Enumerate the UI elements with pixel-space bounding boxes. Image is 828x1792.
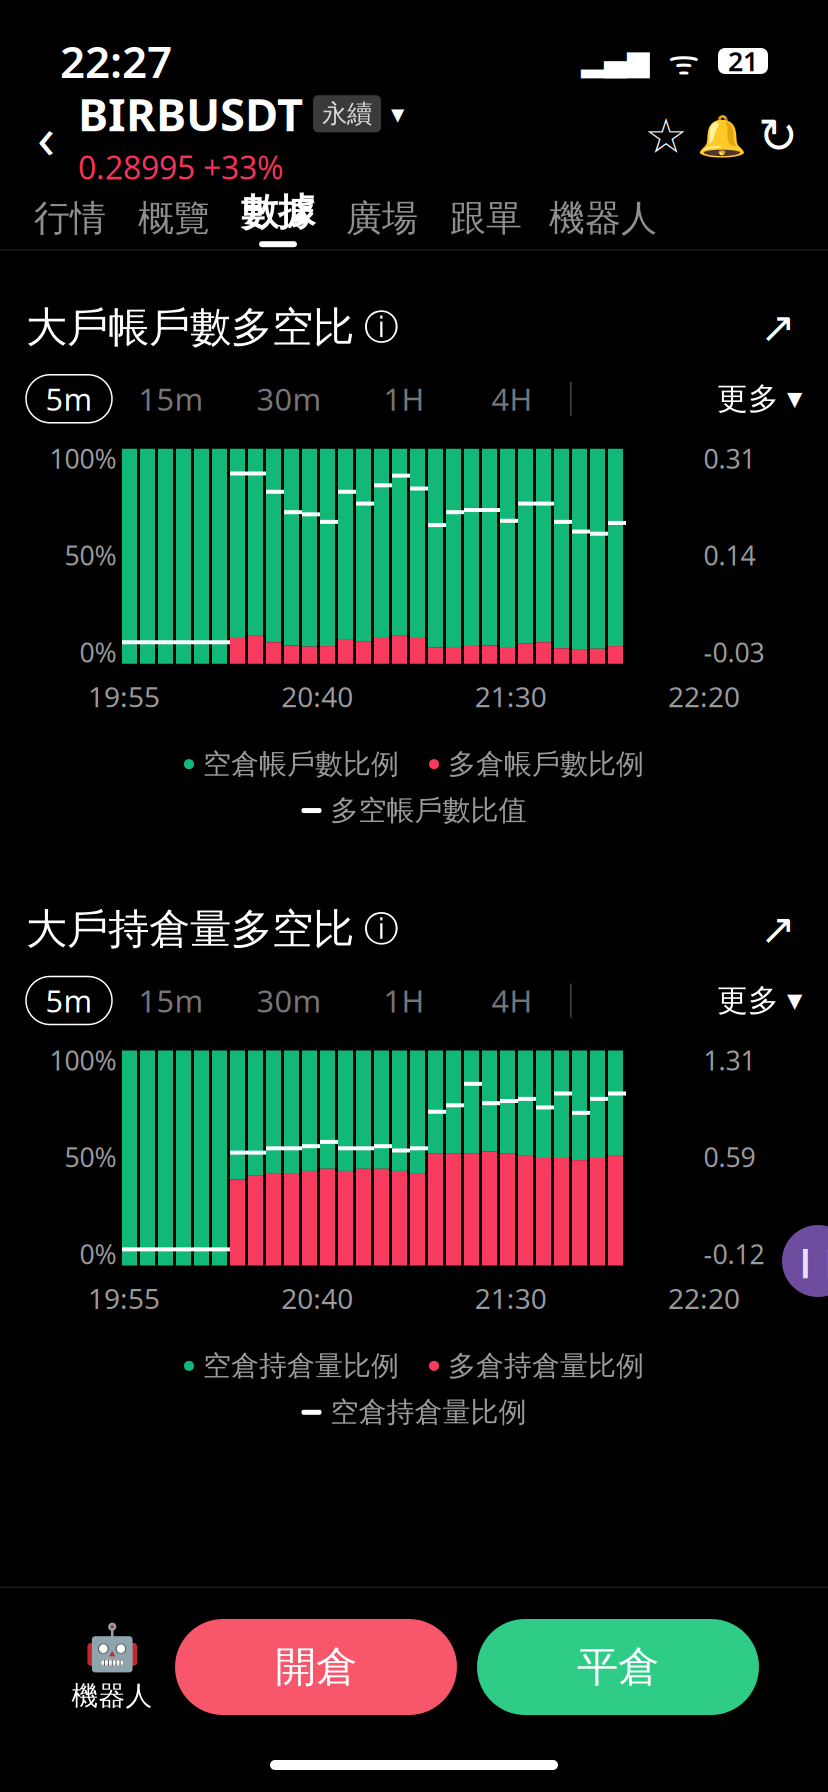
staticText: 5m xyxy=(45,980,92,1021)
staticText: 0% xyxy=(79,634,116,670)
button[interactable]: Share xyxy=(750,108,806,164)
staticText: 空倉持倉量比例 xyxy=(330,1395,526,1429)
staticText: 行情 xyxy=(34,196,106,240)
staticText: 20:40 xyxy=(281,1279,353,1317)
button[interactable]: 數據 xyxy=(226,187,330,249)
staticText: 更多 xyxy=(717,982,779,1019)
staticText: ❙❙ xyxy=(793,1244,828,1278)
button[interactable]: 1H xyxy=(348,976,460,1024)
button[interactable]: 更多 xyxy=(717,375,802,423)
staticText: 大戶帳戶數多空比 xyxy=(26,302,354,353)
staticText: 0.59 xyxy=(703,1139,755,1175)
button[interactable]: 跟單 xyxy=(434,190,538,246)
staticText: 1H xyxy=(383,378,424,419)
button[interactable]: Back xyxy=(22,106,70,166)
staticText: 永續 xyxy=(322,98,372,129)
button[interactable]: 5m xyxy=(26,375,112,423)
button[interactable]: Share xyxy=(754,303,802,351)
staticText: 5m xyxy=(45,378,92,419)
button[interactable]: 更多 xyxy=(717,976,802,1024)
staticText: 跟單 xyxy=(450,196,522,240)
staticText: 100% xyxy=(49,441,116,476)
staticText: 30m xyxy=(256,980,321,1021)
button[interactable]: Favourite xyxy=(638,108,694,164)
staticText: 數據 xyxy=(241,189,315,235)
button[interactable]: 🤖 xyxy=(69,1619,155,1715)
staticText: 21 xyxy=(728,43,758,79)
staticText: 🤖 xyxy=(84,1622,140,1673)
staticText: 0% xyxy=(79,1236,116,1271)
staticText: BIRBUSDT xyxy=(78,84,303,144)
staticText: 0.28995 +33% xyxy=(78,146,284,188)
staticText: 20:40 xyxy=(281,678,353,715)
staticText: 22:20 xyxy=(668,1279,740,1317)
staticText: 更多 xyxy=(717,380,779,418)
staticText: 50% xyxy=(64,1139,116,1175)
button[interactable]: 15m xyxy=(112,375,230,423)
button[interactable]: 15m xyxy=(112,976,230,1024)
button[interactable]: 4H xyxy=(460,375,564,423)
button[interactable]: Share xyxy=(754,905,802,953)
staticText: ⓘ xyxy=(354,908,399,950)
staticText: 21:30 xyxy=(475,678,547,715)
staticText: 15m xyxy=(138,980,203,1021)
staticText: ᯤ xyxy=(650,38,718,84)
staticText: 4H xyxy=(491,980,532,1021)
button[interactable]: Floating assistant xyxy=(782,1225,828,1297)
button[interactable]: 行情 xyxy=(18,190,122,246)
staticText: ▼ xyxy=(787,989,802,1012)
button[interactable]: 4H xyxy=(460,976,564,1024)
staticText: ⓘ xyxy=(354,306,399,349)
staticText: 4H xyxy=(491,378,532,419)
staticText: 50% xyxy=(64,538,116,573)
staticText: -0.12 xyxy=(703,1236,764,1271)
staticText: 22:27 xyxy=(60,32,172,90)
staticText: ↻ xyxy=(758,109,798,163)
button[interactable]: Alerts xyxy=(694,108,750,164)
staticText: 廣場 xyxy=(346,196,418,240)
staticText: 19:55 xyxy=(88,678,160,715)
staticText: 0.31 xyxy=(703,441,755,476)
staticText: 19:55 xyxy=(88,1279,160,1317)
staticText: 多倉帳戶數比例 xyxy=(448,747,644,781)
staticText: 大戶持倉量多空比 xyxy=(26,904,354,954)
button[interactable]: 廣場 xyxy=(330,190,434,246)
button[interactable]: 30m xyxy=(230,375,348,423)
staticText: ▾ xyxy=(391,99,404,129)
button[interactable]: 30m xyxy=(230,976,348,1024)
staticText: 🔔 xyxy=(697,113,747,159)
staticText: 平倉 xyxy=(577,1642,659,1692)
staticText: 空倉帳戶數比例 xyxy=(203,747,399,781)
staticText: 開倉 xyxy=(275,1642,357,1692)
staticText: 空倉持倉量比例 xyxy=(203,1349,399,1383)
button[interactable]: 1H xyxy=(348,375,460,423)
staticText: 22:20 xyxy=(668,678,740,715)
staticText: 多空帳戶數比值 xyxy=(330,793,526,828)
staticText: 1.31 xyxy=(703,1042,755,1078)
staticText: 多倉持倉量比例 xyxy=(448,1349,644,1383)
staticText: ↗ xyxy=(760,905,796,953)
staticText: -0.03 xyxy=(703,634,764,670)
staticText: ☆ xyxy=(644,109,687,163)
staticText: 21:30 xyxy=(475,1279,547,1317)
button[interactable]: 機器人 xyxy=(538,190,668,246)
staticText: ↗ xyxy=(760,303,796,352)
button[interactable]: 開倉 xyxy=(175,1619,457,1715)
button[interactable]: 平倉 xyxy=(477,1619,759,1715)
staticText: ▼ xyxy=(787,387,802,410)
button[interactable]: 5m xyxy=(26,976,112,1024)
staticText: 機器人 xyxy=(549,196,657,240)
staticText: ▂▄▆ xyxy=(581,44,650,78)
button[interactable]: 概覽 xyxy=(122,190,226,246)
staticText: 15m xyxy=(138,378,203,419)
staticText: 1H xyxy=(383,980,424,1021)
staticText: 30m xyxy=(256,378,321,419)
staticText: 0.14 xyxy=(703,538,755,573)
staticText: 機器人 xyxy=(71,1679,152,1712)
staticText: 概覽 xyxy=(138,196,210,240)
staticText: 100% xyxy=(49,1042,116,1078)
